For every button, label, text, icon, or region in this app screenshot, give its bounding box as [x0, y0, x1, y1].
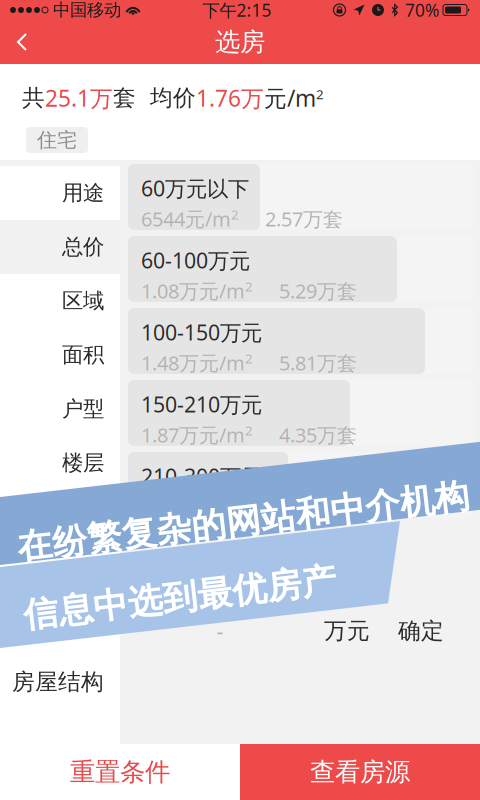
staticText: 150-210万元: [141, 390, 262, 418]
staticText: 25.1万: [45, 83, 113, 113]
staticText: 3.12万套: [279, 493, 357, 520]
staticText: 5.29万套: [279, 277, 357, 304]
staticText: 6544元/m: [141, 205, 231, 232]
staticText: 查看房源: [310, 756, 410, 787]
staticText: 信息中选到最优房产: [22, 568, 337, 610]
button[interactable]: Back: [0, 20, 44, 64]
button[interactable]: 60-100万元: [128, 236, 475, 302]
button[interactable]: 确定: [382, 612, 460, 650]
staticText: 总价: [62, 234, 104, 260]
staticText: 1.48万元/m: [141, 349, 245, 376]
staticText: 2.57万套: [265, 205, 343, 232]
button[interactable]: 总价: [0, 220, 120, 274]
staticText: 100-150万元: [141, 318, 262, 346]
staticText: 住宅: [37, 128, 77, 152]
staticText: 重置条件: [70, 756, 170, 787]
staticText: 楼层: [62, 450, 104, 476]
button[interactable]: 重置条件: [0, 744, 240, 800]
button[interactable]: 210-300万元: [128, 452, 475, 518]
staticText: 均价: [150, 84, 196, 112]
staticText: 2: [245, 277, 253, 295]
button[interactable]: 区域: [0, 274, 120, 328]
button[interactable]: 户型: [0, 382, 120, 436]
button[interactable]: 楼层: [0, 436, 120, 490]
staticText: 中国移动: [53, 0, 121, 21]
button[interactable]: 面积: [0, 328, 120, 382]
staticText: 2: [245, 349, 253, 367]
staticText: 1.87万元/m: [141, 421, 245, 448]
staticText: 套: [113, 84, 136, 112]
button[interactable]: 住宅: [26, 127, 88, 153]
button[interactable]: 查看房源: [240, 744, 480, 800]
staticText: 4.35万套: [279, 421, 357, 448]
staticText: 2: [245, 493, 253, 511]
staticText: 户型: [62, 396, 104, 422]
button[interactable]: 150-210万元: [128, 380, 475, 446]
staticText: 1.08万元/m: [141, 277, 245, 304]
staticText: 选房: [215, 26, 265, 57]
staticText: 2: [245, 421, 253, 439]
staticText: 2: [231, 205, 239, 223]
staticText: 房屋结构: [12, 668, 104, 696]
staticText: 元/m: [264, 83, 316, 113]
staticText: 2.42万元/m: [141, 493, 245, 520]
staticText: 210-300万元: [141, 462, 262, 490]
staticText: 60万元以下: [141, 174, 249, 202]
staticText: 区域: [62, 288, 104, 314]
button[interactable]: 60万元以下: [128, 164, 475, 230]
button[interactable]: 用途: [0, 166, 120, 220]
staticText: 5.81万套: [279, 349, 357, 376]
staticText: 下午2:15: [202, 0, 271, 21]
staticText: 面积: [62, 342, 104, 368]
staticText: 70%: [405, 0, 439, 21]
staticText: 用途: [62, 180, 104, 206]
staticText: 1.76万: [196, 83, 264, 113]
staticText: 共: [22, 84, 45, 112]
button[interactable]: 100-150万元: [128, 308, 475, 374]
staticText: 60-100万元: [141, 246, 250, 274]
staticText: 万元: [324, 617, 370, 645]
staticText: 在纷繁复杂的网站和中介机构: [16, 500, 471, 542]
staticText: 2: [316, 85, 324, 103]
staticText: -: [216, 617, 223, 645]
staticText: 确定: [398, 617, 444, 645]
